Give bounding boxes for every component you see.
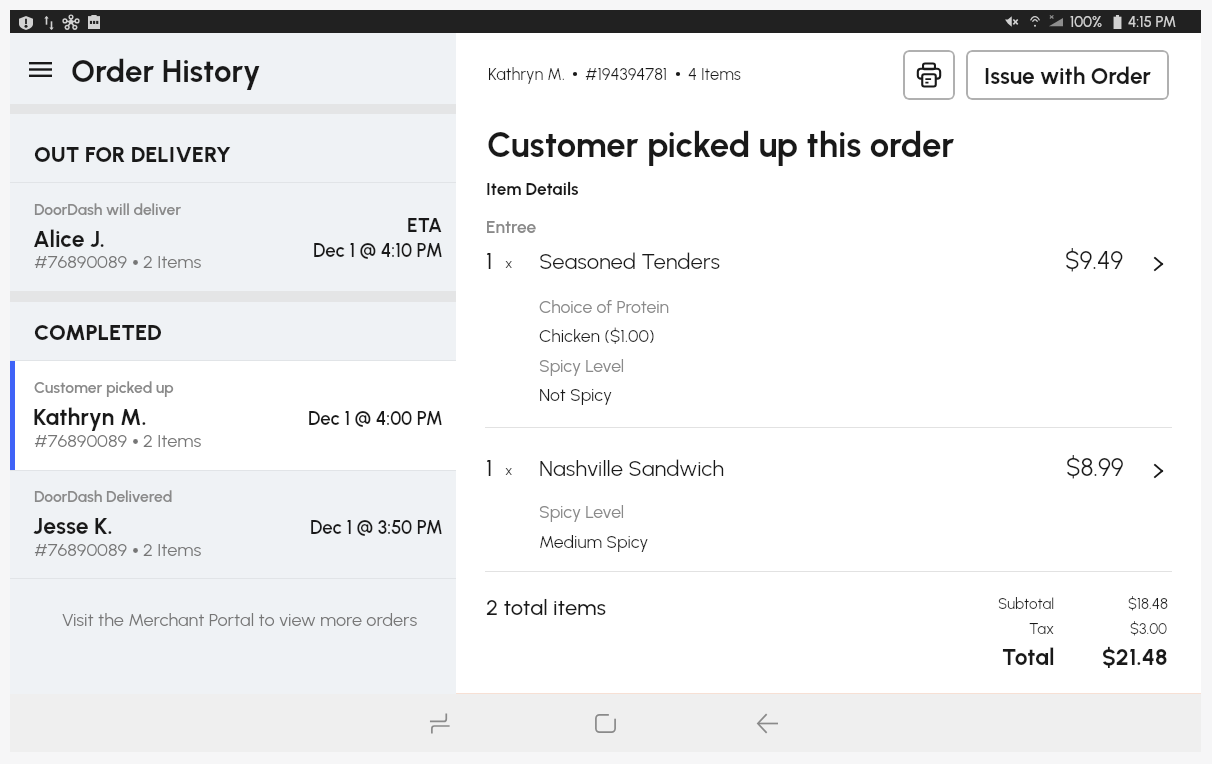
staticText: Alice J. bbox=[33, 225, 105, 253]
button[interactable] bbox=[10, 361, 456, 470]
staticText: Visit the Merchant Portal to view more o… bbox=[62, 609, 418, 631]
staticText: Jesse K. bbox=[33, 512, 113, 540]
button[interactable]: Recent apps bbox=[356, 694, 526, 752]
staticText: x bbox=[505, 255, 513, 272]
staticText: x bbox=[505, 462, 513, 479]
staticText: $9.49 bbox=[1065, 246, 1124, 276]
staticText: DoorDash will deliver bbox=[34, 200, 182, 219]
button[interactable]: 1 bbox=[456, 444, 1201, 478]
staticText: Dec 1 @ 4:10 PM bbox=[313, 239, 443, 261]
staticText: 2 Items bbox=[143, 430, 202, 452]
staticText: #76890089 bbox=[34, 430, 128, 452]
staticText: 100% bbox=[1070, 13, 1103, 31]
staticText: Seasoned Tenders bbox=[539, 248, 721, 275]
button[interactable]: 1 bbox=[456, 237, 1201, 271]
staticText: #194394781 bbox=[585, 64, 668, 84]
staticText: Order History bbox=[71, 52, 261, 90]
button[interactable]: Open navigation menu bbox=[29, 62, 52, 77]
staticText: Dec 1 @ 3:50 PM bbox=[310, 516, 443, 538]
staticText: 1 bbox=[486, 248, 493, 275]
staticText: Subtotal bbox=[998, 595, 1055, 613]
staticText: Choice of Protein bbox=[539, 296, 669, 317]
staticText: Tax bbox=[1029, 620, 1055, 638]
staticText: OUT FOR DELIVERY bbox=[34, 141, 231, 167]
staticText: $21.48 bbox=[1102, 643, 1168, 670]
staticText: Nashville Sandwich bbox=[539, 455, 725, 482]
staticText: Entree bbox=[486, 217, 537, 238]
staticText: 2 Items bbox=[143, 251, 202, 273]
staticText: 4 Items bbox=[688, 64, 741, 84]
staticText: Not Spicy bbox=[539, 384, 613, 405]
button[interactable]: Home bbox=[520, 694, 690, 752]
staticText: Issue with Order bbox=[984, 62, 1152, 89]
staticText: #76890089 bbox=[34, 539, 128, 561]
staticText: Spicy Level bbox=[539, 501, 625, 522]
staticText: $3.00 bbox=[1130, 620, 1168, 638]
staticText: Chicken ($1.00) bbox=[539, 325, 655, 346]
staticText: 2 Items bbox=[143, 539, 202, 561]
staticText: Kathryn M. bbox=[33, 403, 147, 431]
staticText: Kathryn M. bbox=[488, 64, 565, 84]
staticText: $18.48 bbox=[1128, 595, 1168, 613]
staticText: COMPLETED bbox=[34, 319, 162, 345]
staticText: Total bbox=[1002, 643, 1055, 670]
staticText: Customer picked up this order bbox=[487, 124, 955, 166]
staticText: 2 total items bbox=[486, 594, 607, 620]
button[interactable]: Issue with Order bbox=[966, 50, 1169, 100]
staticText: #76890089 bbox=[34, 251, 128, 273]
staticText: 4:15 PM bbox=[1128, 13, 1177, 31]
button[interactable]: Print receipt bbox=[903, 50, 955, 100]
staticText: $8.99 bbox=[1066, 453, 1124, 483]
staticText: 1 bbox=[486, 455, 493, 482]
staticText: ETA bbox=[407, 214, 443, 237]
staticText: Medium Spicy bbox=[539, 531, 649, 552]
button[interactable]: Back bbox=[682, 694, 852, 752]
button[interactable]: Visit the Merchant Portal to view more o… bbox=[10, 579, 456, 692]
staticText: Customer picked up bbox=[34, 378, 174, 397]
staticText: DoorDash Delivered bbox=[34, 487, 173, 506]
staticText: Spicy Level bbox=[539, 355, 625, 376]
staticText: Dec 1 @ 4:00 PM bbox=[308, 407, 443, 429]
staticText: Item Details bbox=[486, 179, 579, 200]
